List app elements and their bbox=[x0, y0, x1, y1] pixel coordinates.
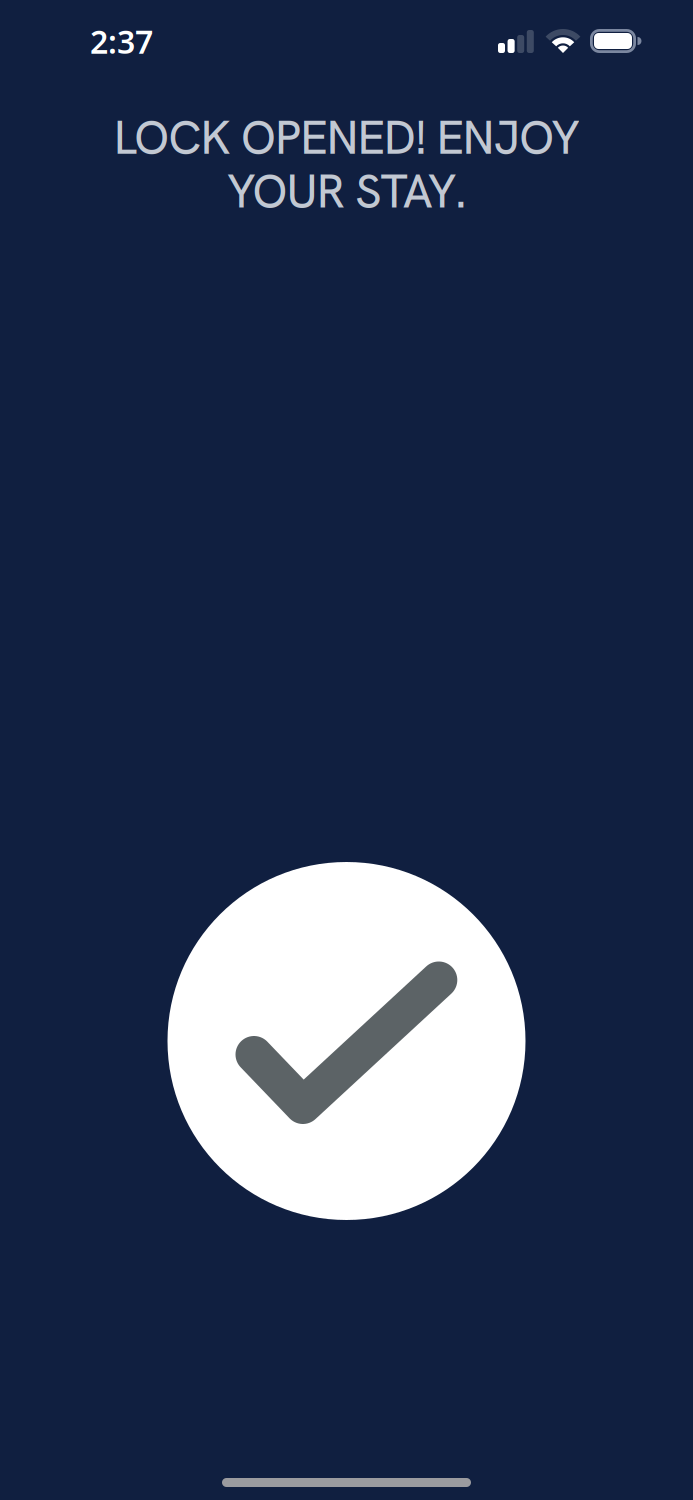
staticText: LOCK OPENED! ENJOY YOUR STAY. bbox=[114, 107, 579, 222]
button[interactable]: Lock opened — done bbox=[167, 862, 525, 1220]
staticText: 2:37 bbox=[90, 20, 153, 62]
